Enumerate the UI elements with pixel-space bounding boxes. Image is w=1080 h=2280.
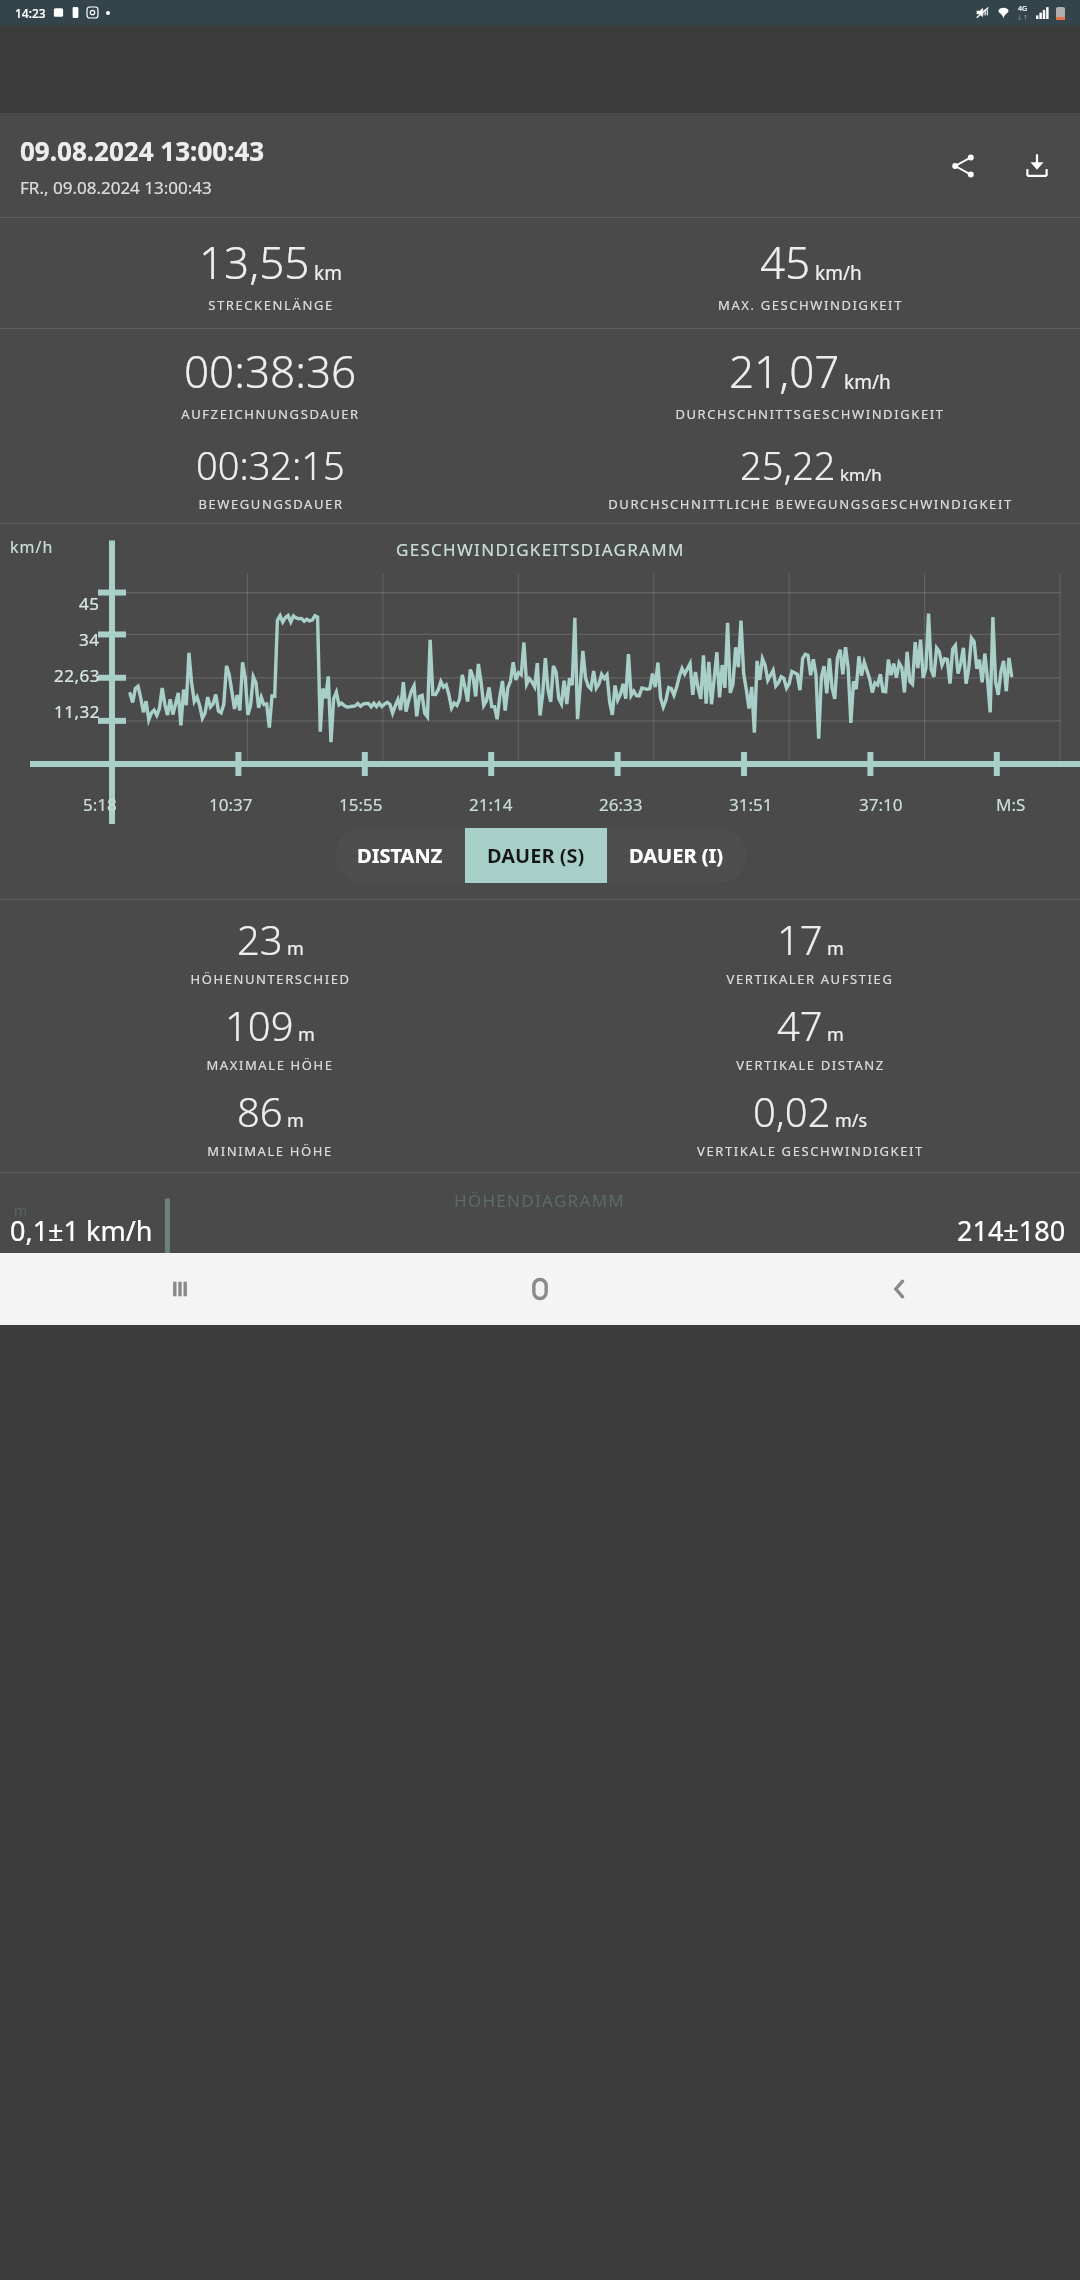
staticText: 09.08.2024 13:00:43 — [20, 133, 265, 168]
staticText: 13,55 — [199, 232, 310, 292]
staticText: ↓↑ — [1017, 14, 1029, 22]
staticText: 34 — [79, 628, 100, 651]
staticText: HÖHENDIAGRAMM — [454, 1189, 626, 1212]
button[interactable]: Home — [360, 1253, 720, 1325]
staticText: m — [827, 1022, 844, 1047]
button[interactable]: DAUER (I) — [607, 828, 746, 883]
staticText: km — [314, 260, 342, 286]
staticText: 21:14 — [469, 793, 513, 816]
staticText: HÖHENUNTERSCHIED — [190, 970, 351, 988]
button[interactable]: DISTANZ — [335, 828, 465, 883]
staticText: m — [14, 1201, 28, 1220]
staticText: 11,32 — [54, 700, 100, 723]
staticText: BEWEGUNGSDAUER — [198, 495, 344, 513]
staticText: m — [287, 1108, 304, 1133]
staticText: MAX. GESCHWINDIGKEIT — [718, 296, 903, 314]
staticText: VERTIKALE GESCHWINDIGKEIT — [697, 1142, 924, 1160]
staticText: DURCHSCHNITTLICHE BEWEGUNGSGESCHWINDIGKE… — [608, 495, 1013, 513]
staticText: M:S — [996, 793, 1026, 816]
button[interactable]: Share — [940, 143, 986, 189]
staticText: km/h — [10, 536, 54, 558]
staticText: m — [827, 936, 844, 961]
staticText: 214±180 — [957, 1212, 1066, 1249]
staticText: 00:32:15 — [196, 439, 345, 491]
staticText: 4G — [1018, 4, 1028, 14]
staticText: STRECKENLÄNGE — [208, 296, 334, 314]
button[interactable]: Recent apps — [0, 1253, 360, 1325]
staticText: MINIMALE HÖHE — [207, 1142, 333, 1160]
staticText: 17 — [777, 912, 823, 966]
staticText: 21,07 — [729, 341, 840, 401]
staticText: VERTIKALE DISTANZ — [736, 1056, 885, 1074]
staticText: 37:10 — [859, 793, 903, 816]
staticText: 109 — [225, 998, 294, 1052]
staticText: 0,02 — [753, 1084, 831, 1138]
staticText: 25,22 — [740, 439, 836, 491]
staticText: DISTANZ — [357, 842, 443, 869]
staticText: m — [287, 936, 304, 961]
staticText: m/s — [835, 1108, 868, 1133]
staticText: VERTIKALER AUFSTIEG — [726, 970, 894, 988]
staticText: MAXIMALE HÖHE — [206, 1056, 334, 1074]
staticText: 23 — [237, 912, 283, 966]
staticText: AUFZEICHNUNGSDAUER — [181, 405, 360, 423]
staticText: 5:18 — [83, 793, 117, 816]
staticText: 15:55 — [339, 793, 383, 816]
staticText: 14:23 — [15, 5, 46, 21]
button[interactable]: DAUER (S) — [465, 828, 607, 883]
staticText: DAUER (S) — [487, 842, 585, 869]
staticText: 45 — [79, 592, 100, 615]
staticText: m — [298, 1022, 315, 1047]
staticText: 86 — [237, 1084, 283, 1138]
staticText: 26:33 — [599, 793, 643, 816]
staticText: 22,63 — [54, 664, 100, 687]
staticText: 10:37 — [209, 793, 253, 816]
staticText: km/h — [840, 463, 882, 486]
staticText: DURCHSCHNITTSGESCHWINDIGKEIT — [675, 405, 945, 423]
staticText: 00:38:36 — [184, 341, 357, 401]
staticText: km/h — [844, 369, 891, 395]
staticText: DAUER (I) — [629, 842, 724, 869]
staticText: 0,1±1 km/h — [10, 1212, 153, 1249]
staticText: km/h — [815, 260, 862, 286]
button[interactable]: Download — [1014, 143, 1060, 189]
staticText: FR., 09.08.2024 13:00:43 — [20, 176, 212, 199]
staticText: 47 — [777, 998, 823, 1052]
staticText: 31:51 — [729, 793, 773, 816]
button[interactable]: Back — [720, 1253, 1080, 1325]
staticText: GESCHWINDIGKEITSDIAGRAMM — [396, 538, 685, 561]
staticText: 45 — [760, 232, 811, 292]
